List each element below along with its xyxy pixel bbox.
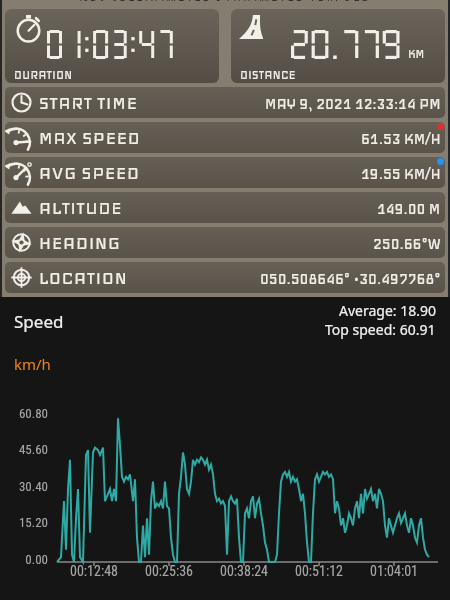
staticText: 15.20 xyxy=(0,515,48,530)
staticText: 00:25:36 xyxy=(134,563,204,579)
staticText: 60.80 xyxy=(0,406,48,421)
staticText: 19.55 KM/H xyxy=(361,163,441,183)
staticText: 01:04:01 xyxy=(359,563,429,579)
staticText: KM xyxy=(408,46,425,61)
button[interactable]: DURATION xyxy=(5,9,219,83)
staticText: GPS SPEEDOMETER • ODOMETER TRACKER xyxy=(0,0,450,1)
button[interactable]: MAX SPEED xyxy=(5,122,445,153)
staticText: LOCATION xyxy=(39,267,128,288)
staticText: Average: 18.90 xyxy=(339,301,436,320)
staticText: km/h xyxy=(14,354,51,374)
staticText: MAX SPEED xyxy=(39,127,141,148)
staticText: 149.00 M xyxy=(377,198,441,218)
button[interactable]: START TIME xyxy=(5,87,445,118)
staticText: DISTANCE xyxy=(240,66,296,83)
staticText: DURATION xyxy=(14,66,73,83)
staticText: 050.508646° •30.497768° xyxy=(260,268,441,288)
staticText: 250.66°W xyxy=(373,233,441,253)
staticText: 30.40 xyxy=(0,479,48,494)
staticText: AVG SPEED xyxy=(39,162,140,183)
staticText: 61.53 KM/H xyxy=(361,128,441,148)
staticText: 45.60 xyxy=(0,442,48,457)
button[interactable]: AVG SPEED xyxy=(5,157,445,188)
button[interactable]: HEADING xyxy=(5,227,445,258)
staticText: Top speed: 60.91 xyxy=(325,320,436,339)
staticText: START TIME xyxy=(39,92,138,113)
staticText: Speed xyxy=(14,310,64,333)
staticText: 00:51:12 xyxy=(284,563,354,579)
staticText: ALTITUDE xyxy=(39,197,123,218)
staticText: 00:12:48 xyxy=(59,563,129,579)
button[interactable]: ALTITUDE xyxy=(5,192,445,223)
staticText: HEADING xyxy=(39,232,121,253)
button[interactable]: LOCATION xyxy=(5,262,445,293)
staticText: MAY 9, 2021 12:33:14 PM xyxy=(265,93,441,113)
staticText: 00:38:24 xyxy=(209,563,279,579)
staticText: 0.00 xyxy=(0,552,48,567)
button[interactable]: KM xyxy=(231,9,445,83)
